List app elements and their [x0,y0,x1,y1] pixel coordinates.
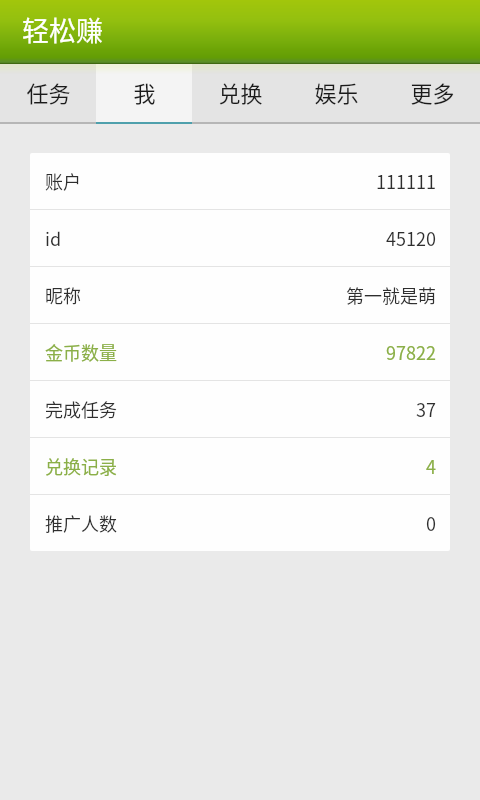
button[interactable]: 完成任务 [30,381,450,437]
button[interactable]: 任务 [0,64,96,122]
button[interactable]: 兑换记录 [30,438,450,494]
button[interactable]: 我 [96,64,192,122]
staticText: 兑换 [218,76,263,108]
button[interactable]: 昵称 [30,267,450,323]
button[interactable]: id [30,210,450,266]
staticText: 金币数量 [45,339,117,365]
staticText: 我 [133,76,156,108]
button[interactable]: 推广人数 [30,495,450,551]
button[interactable]: 兑换 [192,64,288,122]
staticText: 任务 [26,76,71,108]
staticText: 完成任务 [45,396,117,422]
staticText: 更多 [410,76,455,108]
staticText: 昵称 [45,282,81,308]
staticText: 0 [426,510,436,536]
staticText: 4 [426,453,436,479]
staticText: 111111 [376,168,436,194]
staticText: 97822 [386,339,436,365]
button[interactable]: 娱乐 [288,64,384,122]
staticText: 账户 [45,168,81,194]
staticText: id [45,225,62,251]
staticText: 轻松赚 [22,10,103,49]
staticText: 第一就是萌 [346,282,436,308]
staticText: 娱乐 [314,76,359,108]
button[interactable]: 金币数量 [30,324,450,380]
button[interactable]: 更多 [384,64,480,122]
staticText: 推广人数 [45,510,117,536]
staticText: 兑换记录 [45,453,117,479]
staticText: 45120 [386,225,436,251]
button[interactable]: 账户 [30,153,450,209]
staticText: 37 [416,396,436,422]
